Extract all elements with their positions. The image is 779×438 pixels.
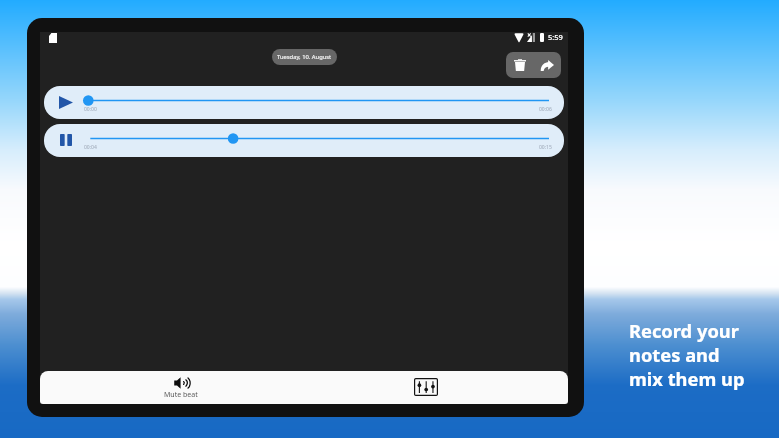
staticText: 5:59	[548, 32, 563, 42]
button[interactable]: 00:00	[44, 86, 564, 119]
staticText: 00:04	[84, 144, 97, 151]
staticText: 00:00	[84, 106, 97, 113]
button[interactable]: Mute beat	[156, 371, 206, 404]
button[interactable]: Share	[533, 52, 561, 78]
button[interactable]: Mixer	[408, 371, 444, 403]
button[interactable]: Tuesday, 10. August	[272, 49, 337, 65]
staticText: Record your notes and mix them up	[629, 318, 779, 391]
staticText: 00:06	[539, 106, 552, 113]
staticText: Mute beat	[164, 390, 198, 400]
staticText: 00:15	[539, 144, 552, 151]
staticText: Tuesday, 10. August	[277, 53, 332, 61]
button[interactable]: 00:04	[44, 124, 564, 157]
button[interactable]: Delete	[506, 52, 533, 78]
